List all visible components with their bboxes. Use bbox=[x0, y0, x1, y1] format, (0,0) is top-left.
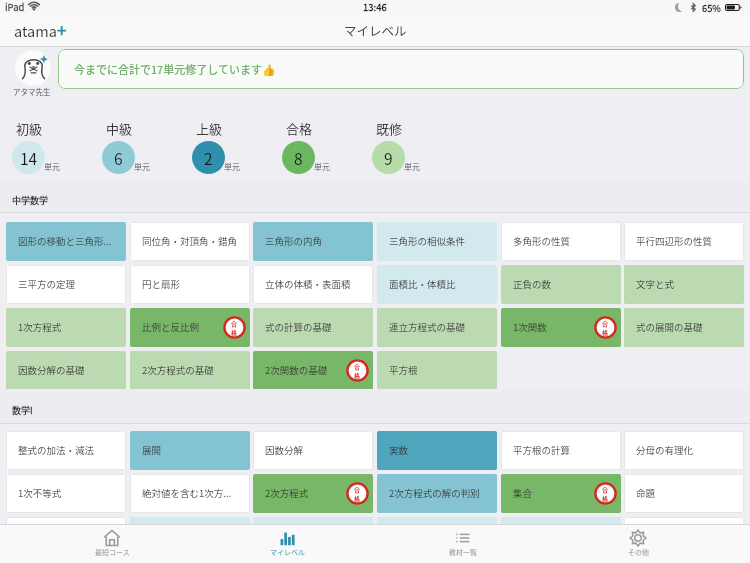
button[interactable]: 2 bbox=[192, 141, 225, 174]
staticText: 単元 bbox=[314, 161, 330, 173]
button[interactable]: 平行四辺形の性質 bbox=[624, 222, 744, 261]
button[interactable]: マイレベル bbox=[243, 524, 331, 563]
staticText: 平方根 bbox=[389, 363, 418, 377]
button[interactable]: 図形の移動と三角形... bbox=[6, 222, 126, 261]
staticText: 展開 bbox=[142, 443, 162, 457]
staticText: 合格 bbox=[286, 119, 313, 138]
button[interactable]: 式の展開の基礎 bbox=[624, 308, 744, 347]
staticText: 実数 bbox=[389, 443, 409, 457]
staticText: 今までに合計で17単元修了しています👍 bbox=[74, 61, 276, 77]
staticText: 6 bbox=[114, 147, 123, 169]
button[interactable]: 平方根 bbox=[377, 351, 497, 390]
button[interactable]: 2次方程式の解の判別 bbox=[377, 474, 497, 513]
staticText: 立体の体積・表面積 bbox=[265, 277, 351, 291]
button[interactable]: 比例と反比例 bbox=[130, 308, 250, 347]
button[interactable]: 絶対値を含む1次方... bbox=[130, 474, 250, 513]
button[interactable]: 因数分解の基礎 bbox=[6, 351, 126, 390]
button[interactable]: 整式の加法・減法 bbox=[6, 431, 126, 470]
staticText: 合 bbox=[354, 362, 361, 371]
button[interactable]: 9 bbox=[372, 141, 405, 174]
staticText: 2次方程式の解の判別 bbox=[389, 486, 480, 500]
button[interactable]: 多角形の性質 bbox=[501, 222, 621, 261]
other: マイレベル bbox=[278, 529, 296, 547]
button[interactable]: 三角形の相似条件 bbox=[377, 222, 497, 261]
other: 最短コース bbox=[103, 529, 121, 547]
staticText: 2次方程式の基礎 bbox=[142, 363, 214, 377]
button[interactable]: 1次関数 bbox=[501, 308, 621, 347]
staticText: 初級 bbox=[16, 119, 43, 138]
button[interactable]: 1次不等式 bbox=[6, 474, 126, 513]
button[interactable]: 1次方程式 bbox=[6, 308, 126, 347]
button[interactable]: 文字と式 bbox=[624, 265, 744, 304]
button[interactable]: 展開 bbox=[130, 431, 250, 470]
staticText: 格 bbox=[354, 371, 361, 380]
button[interactable]: 今までに合計で17単元修了しています👍 bbox=[58, 49, 744, 89]
button[interactable]: 三平方の定理 bbox=[6, 265, 126, 304]
staticText: 2次関数の基礎 bbox=[265, 363, 328, 377]
staticText: 格 bbox=[231, 328, 238, 337]
staticText: 正負の数 bbox=[513, 277, 552, 291]
staticText: 多角形の性質 bbox=[513, 234, 571, 248]
button[interactable]: 平方根の計算 bbox=[501, 431, 621, 470]
staticText: 因数分解 bbox=[265, 443, 304, 457]
staticText: iPad bbox=[5, 0, 25, 14]
button[interactable]: 因数分解 bbox=[253, 431, 373, 470]
button[interactable]: 実数 bbox=[377, 431, 497, 470]
staticText: アタマ先生 bbox=[13, 86, 51, 97]
staticText: 因数分解の基礎 bbox=[18, 363, 85, 377]
button[interactable]: 最短コース bbox=[68, 524, 156, 563]
staticText: 9 bbox=[384, 147, 393, 169]
button[interactable]: 教材一覧 bbox=[419, 524, 507, 563]
staticText: 同位角・対頂角・錯角 bbox=[142, 234, 238, 248]
staticText: 中学数学 bbox=[12, 194, 49, 207]
staticText: 平方根の計算 bbox=[513, 443, 571, 457]
button[interactable]: 式の計算の基礎 bbox=[253, 308, 373, 347]
staticText: 合 bbox=[602, 319, 609, 328]
button[interactable]: 円と扇形 bbox=[130, 265, 250, 304]
other: 教材一覧 bbox=[454, 529, 472, 547]
staticText: 集合 bbox=[513, 486, 533, 500]
staticText: 平行四辺形の性質 bbox=[636, 234, 713, 248]
staticText: 命題 bbox=[636, 486, 656, 500]
staticText: 比例と反比例 bbox=[142, 320, 200, 334]
staticText: その他 bbox=[628, 547, 649, 557]
button[interactable] bbox=[6, 517, 126, 524]
button[interactable]: 2次方程式の基礎 bbox=[130, 351, 250, 390]
staticText: 式の計算の基礎 bbox=[265, 320, 332, 334]
button[interactable]: 2次方程式 bbox=[253, 474, 373, 513]
button[interactable] bbox=[624, 517, 744, 524]
button[interactable]: 集合 bbox=[501, 474, 621, 513]
button[interactable]: 同位角・対頂角・錯角 bbox=[130, 222, 250, 261]
button[interactable]: 立体の体積・表面積 bbox=[253, 265, 373, 304]
button[interactable]: 面積比・体積比 bbox=[377, 265, 497, 304]
staticText: マイレベル bbox=[344, 21, 407, 39]
staticText: 数学I bbox=[12, 404, 33, 417]
staticText: 2次方程式 bbox=[265, 486, 309, 500]
staticText: 格 bbox=[602, 494, 609, 503]
staticText: 中級 bbox=[106, 119, 133, 138]
button[interactable]: 正負の数 bbox=[501, 265, 621, 304]
button[interactable]: 連立方程式の基礎 bbox=[377, 308, 497, 347]
staticText: マイレベル bbox=[270, 547, 305, 557]
staticText: 65% bbox=[702, 1, 721, 14]
staticText: 合 bbox=[231, 319, 238, 328]
staticText: 式の展開の基礎 bbox=[636, 320, 703, 334]
button[interactable]: 2次関数の基礎 bbox=[253, 351, 373, 390]
button[interactable]: 命題 bbox=[624, 474, 744, 513]
button[interactable]: その他 bbox=[594, 524, 682, 563]
staticText: 1次不等式 bbox=[18, 486, 62, 500]
button[interactable]: 14 bbox=[12, 141, 45, 174]
staticText: 連立方程式の基礎 bbox=[389, 320, 466, 334]
button[interactable]: 8 bbox=[282, 141, 315, 174]
staticText: 既修 bbox=[376, 119, 403, 138]
button[interactable]: 分母の有理化 bbox=[624, 431, 744, 470]
button[interactable]: 三角形の内角 bbox=[253, 222, 373, 261]
staticText: 8 bbox=[294, 147, 303, 169]
button[interactable]: 6 bbox=[102, 141, 135, 174]
staticText: + bbox=[57, 17, 67, 42]
staticText: 14 bbox=[20, 147, 38, 169]
